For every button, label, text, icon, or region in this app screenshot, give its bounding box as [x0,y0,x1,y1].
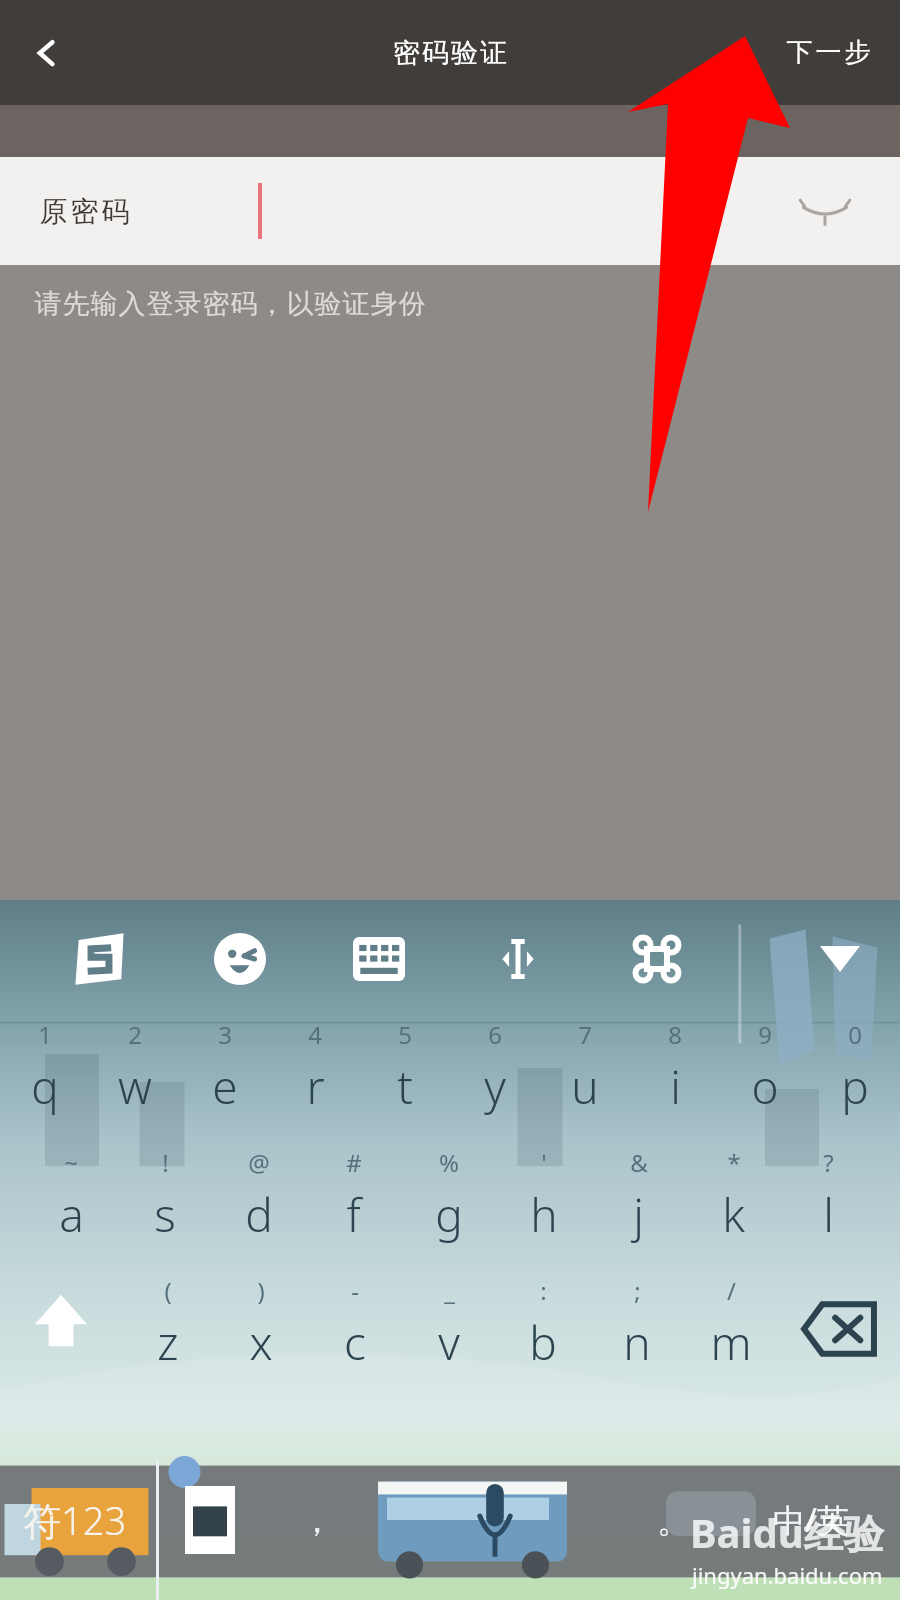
button[interactable]: 3 [180,1018,270,1128]
button[interactable]: ( [121,1274,214,1384]
button[interactable]: 7 [540,1018,630,1128]
button[interactable]: # [306,1146,401,1256]
button[interactable]: 中/英 [721,1440,900,1600]
staticText: 中/英 [773,1498,849,1542]
button[interactable]: * [686,1146,781,1256]
button[interactable]: 1 [0,1018,90,1128]
staticText: 下一步 [785,36,872,69]
button[interactable]: / [684,1274,778,1384]
button[interactable]: 4 [270,1018,360,1128]
button[interactable]: - [308,1274,402,1384]
staticText: r [306,1055,325,1118]
staticText: 4 [308,1018,322,1051]
button[interactable]: % [401,1146,496,1256]
staticText: f [346,1183,361,1246]
staticText: 密码验证 [392,36,508,70]
button[interactable]: ~ [24,1146,118,1256]
staticText: i [670,1055,681,1118]
button[interactable]: ， [269,1440,364,1600]
staticText: t [397,1055,413,1118]
button[interactable]: & [591,1146,686,1256]
button[interactable]: 下一步 [785,36,872,69]
staticText: 2 [128,1018,142,1051]
button[interactable]: ! [118,1146,212,1256]
button[interactable]: 2 [90,1018,180,1128]
staticText: z [157,1311,179,1374]
staticText: jingyan.baidu.com [692,1560,883,1590]
staticText: 6 [488,1018,502,1051]
staticText: g [435,1183,463,1246]
button[interactable]: Shortcuts [587,914,726,1004]
staticText: k [722,1183,745,1246]
staticText: Baidu经验 [690,1505,884,1560]
button[interactable]: Back [14,20,80,86]
staticText: y [484,1055,506,1118]
staticText: ! [162,1146,169,1179]
button[interactable]: ; [590,1274,684,1384]
staticText: d [245,1183,273,1246]
button[interactable]: : [496,1274,590,1384]
staticText: & [630,1146,648,1179]
button[interactable]: @ [212,1146,306,1256]
staticText: 3 [218,1018,232,1051]
button[interactable]: 9 [720,1018,810,1128]
staticText: ; [634,1274,641,1307]
staticText: ( [164,1274,172,1307]
staticText: p [841,1055,869,1118]
staticText: @ [248,1146,270,1179]
button[interactable]: English keyboard [150,1440,269,1600]
staticText: q [31,1055,59,1118]
staticText: 1 [38,1018,52,1051]
staticText: h [530,1183,558,1246]
staticText: l [823,1183,834,1246]
button[interactable]: Move cursor [448,914,587,1004]
staticText: c [344,1311,366,1374]
button[interactable]: 符123 [0,1440,150,1600]
staticText: * [727,1146,741,1179]
staticText: u [571,1055,599,1118]
staticText: 。 [657,1499,691,1542]
staticText: 9 [758,1018,772,1051]
button[interactable]: Keyboard layout [309,914,448,1004]
staticText: o [751,1055,779,1118]
staticText: 8 [668,1018,682,1051]
button[interactable]: ) [214,1274,308,1384]
button[interactable]: Shift [0,1274,121,1384]
staticText: ~ [64,1146,78,1179]
staticText: s [154,1183,176,1246]
button[interactable]: 原密码 [0,157,900,265]
staticText: 5 [398,1018,412,1051]
staticText: w [118,1055,152,1118]
button[interactable]: 。 [626,1440,721,1600]
staticText: 符123 [23,1494,127,1546]
button[interactable]: Voice input [364,1440,626,1600]
button[interactable]: 8 [630,1018,720,1128]
staticText: - [351,1274,359,1307]
staticText: b [529,1311,557,1374]
button[interactable]: ' [496,1146,591,1256]
staticText: a [59,1183,84,1246]
button[interactable]: Emoji [170,914,309,1004]
staticText: 0 [848,1018,862,1051]
button[interactable]: 5 [360,1018,450,1128]
button[interactable]: Show password [796,182,854,240]
button[interactable]: Backspace [778,1274,900,1384]
staticText: 原密码 [38,194,131,229]
button[interactable]: _ [402,1274,496,1384]
staticText: ) [257,1274,265,1307]
staticText: # [346,1146,362,1179]
staticText: ， [300,1499,334,1542]
staticText: : [540,1274,547,1307]
staticText: ' [541,1146,547,1179]
staticText: 7 [578,1018,592,1051]
staticText: j [633,1183,644,1246]
staticText: m [710,1311,752,1374]
button[interactable]: 0 [810,1018,900,1128]
staticText: v [438,1311,460,1374]
button[interactable]: Hide keyboard [810,929,870,989]
staticText: _ [444,1274,455,1307]
button[interactable]: ? [781,1146,876,1256]
button[interactable]: Sogou input [30,914,170,1004]
button[interactable]: 6 [450,1018,540,1128]
staticText: x [249,1311,273,1374]
